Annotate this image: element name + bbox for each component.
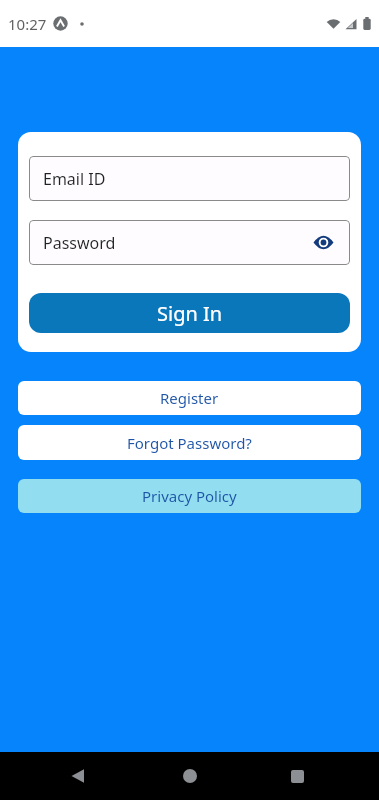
button[interactable] — [174, 760, 206, 792]
staticText: Forgot Password? — [127, 433, 252, 453]
staticText: 10:27 — [8, 14, 47, 34]
button[interactable]: Password — [29, 220, 350, 265]
button[interactable]: Register — [18, 381, 361, 415]
staticText: Register — [160, 388, 219, 408]
staticText: Privacy Policy — [142, 486, 237, 506]
staticText: Sign In — [157, 300, 223, 327]
staticText: Email ID — [43, 168, 106, 190]
button[interactable]: Email ID — [29, 156, 350, 201]
button[interactable] — [281, 760, 313, 792]
button[interactable]: Privacy Policy — [18, 479, 361, 513]
button[interactable]: Forgot Password? — [18, 425, 361, 460]
button[interactable]: Sign In — [29, 293, 350, 333]
button[interactable] — [62, 760, 94, 792]
staticText: Password — [43, 232, 116, 254]
